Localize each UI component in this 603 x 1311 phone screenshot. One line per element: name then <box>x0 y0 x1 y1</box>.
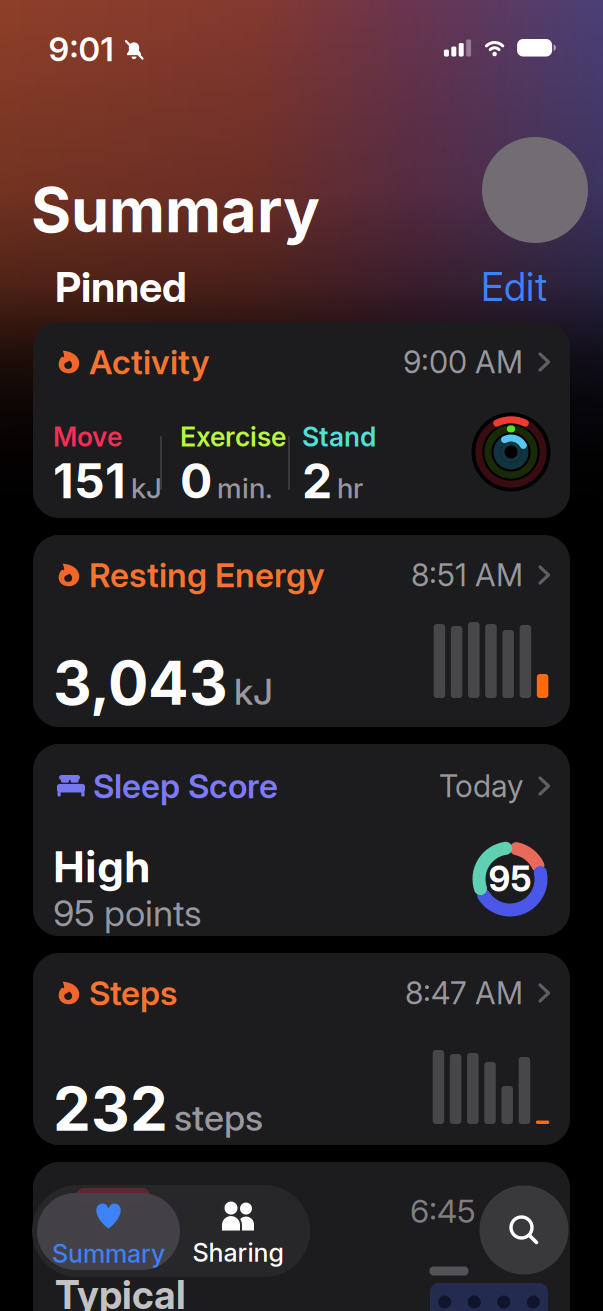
staticText: 0 <box>180 452 212 509</box>
button[interactable]: Steps <box>33 953 570 1145</box>
staticText: 2 <box>302 452 332 509</box>
staticText: hr <box>337 471 363 504</box>
button[interactable]: 6:45 AM <box>33 1162 570 1311</box>
staticText: 8:51 AM <box>411 557 523 593</box>
staticText: Today <box>439 768 523 804</box>
staticText: kJ <box>234 670 273 713</box>
button[interactable]: Sharing <box>178 1192 298 1275</box>
staticText: Sleep Score <box>93 766 278 806</box>
button[interactable]: Edit <box>481 264 547 310</box>
button[interactable]: Activity <box>33 322 570 518</box>
staticText: Exercise <box>180 421 286 452</box>
staticText: 151 <box>53 452 126 509</box>
staticText: kJ <box>131 471 162 504</box>
staticText: 6:45 AM <box>410 1192 533 1230</box>
staticText: Summary <box>31 174 320 246</box>
staticText: min. <box>217 471 273 504</box>
button[interactable]: Summary <box>37 1192 180 1275</box>
staticText: Move <box>53 421 122 452</box>
staticText: 8:47 AM <box>405 975 523 1011</box>
staticText: Typical <box>55 1272 186 1311</box>
staticText: Resting Energy <box>89 555 325 595</box>
staticText: Pinned <box>55 263 187 311</box>
button[interactable]: Profile <box>482 137 588 243</box>
staticText: High <box>53 842 151 892</box>
staticText: 95 <box>488 859 531 899</box>
staticText: Stand <box>302 421 376 452</box>
staticText: 9:00 AM <box>403 344 523 380</box>
button[interactable]: Sleep Score <box>33 744 570 936</box>
staticText: 232 <box>53 1074 168 1144</box>
staticText: 3,043 <box>53 648 228 718</box>
staticText: Activity <box>89 342 210 382</box>
staticText: Sharing <box>192 1238 283 1267</box>
button[interactable]: Resting Energy <box>33 535 570 727</box>
button[interactable]: Search <box>479 1185 568 1274</box>
staticText: steps <box>174 1096 263 1139</box>
staticText: 9:01 <box>48 29 113 69</box>
staticText: Steps <box>89 973 177 1013</box>
staticText: 95 points <box>53 892 202 934</box>
staticText: Edit <box>481 264 547 310</box>
staticText: Summary <box>52 1239 165 1268</box>
